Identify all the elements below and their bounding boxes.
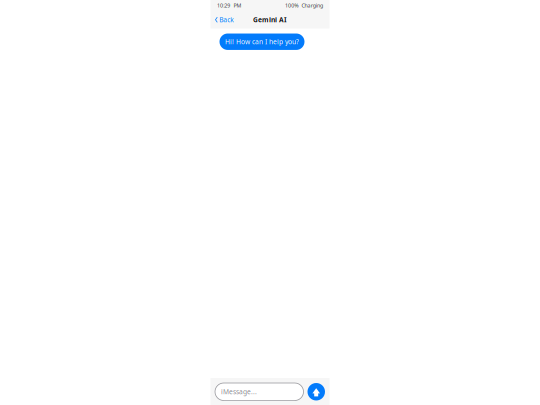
button[interactable]: Send	[307, 383, 325, 400]
staticText: iMessage...	[221, 387, 257, 396]
button[interactable]: Back	[210, 12, 239, 28]
button[interactable]: iMessage...	[215, 383, 303, 400]
staticText: Gemini AI	[253, 15, 287, 24]
staticText: Back	[219, 15, 234, 24]
staticText: Hi! How can I help you?	[225, 37, 299, 46]
staticText: 10:29 PM	[217, 2, 242, 9]
staticText: 100% Charging	[285, 2, 323, 9]
